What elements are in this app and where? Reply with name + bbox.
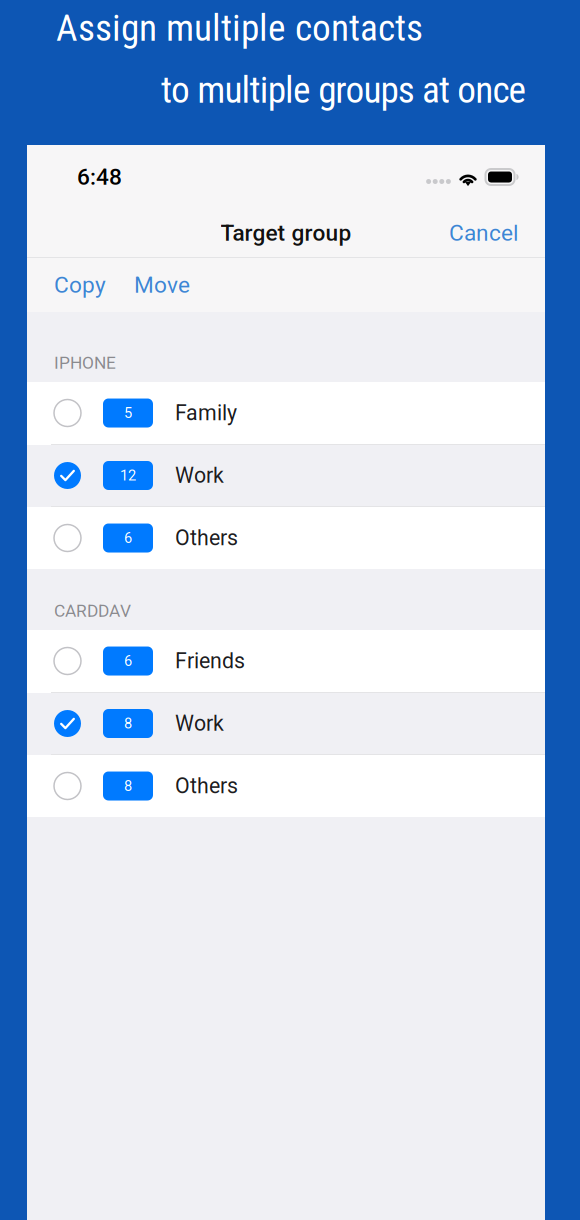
staticText: Cancel [449,220,519,246]
button[interactable]: Copy [27,272,106,298]
button[interactable]: 8 [27,693,545,755]
staticText: Copy [54,272,106,298]
button[interactable]: Cancel [449,220,545,246]
staticText: Friends [175,648,245,673]
staticText: Target group [220,220,351,246]
staticText: 8 [124,715,132,732]
staticText: Work [175,711,224,736]
button[interactable]: 8 [27,755,545,817]
button[interactable]: Move [106,272,190,298]
staticText: CARDDAV [54,601,131,621]
button[interactable]: 12 [27,445,545,507]
button[interactable]: 5 [27,382,545,445]
staticText: 12 [120,467,136,484]
staticText: 6 [124,652,132,670]
staticText: Others [175,525,238,550]
staticText: 6:48 [77,164,122,190]
staticText: Assign multiple contacts [56,6,423,50]
staticText: Family [175,400,237,425]
staticText: Work [175,463,224,488]
staticText: 6 [124,529,132,547]
staticText: Others [175,773,238,798]
staticText: to multiple groups at once [161,68,526,112]
staticText: 8 [124,777,132,795]
button[interactable]: 6 [27,630,545,693]
staticText: 5 [124,404,132,422]
staticText: Move [134,272,190,298]
staticText: IPHONE [54,353,116,373]
button[interactable]: 6 [27,507,545,569]
